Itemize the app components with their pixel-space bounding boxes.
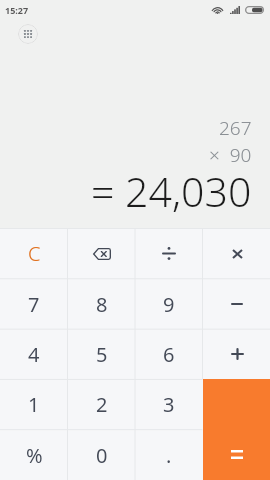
button[interactable]: C [0, 229, 68, 279]
staticText: % [26, 442, 43, 469]
button[interactable]: % [0, 430, 68, 480]
button[interactable]: 1 [0, 379, 68, 429]
button[interactable]: . [135, 430, 203, 480]
staticText: 1 [28, 391, 40, 418]
staticText: 5 [96, 341, 108, 368]
staticText: = 24,030 [91, 163, 252, 219]
button[interactable]: Backspace [68, 229, 136, 279]
staticText: 267 [219, 115, 252, 141]
button[interactable]: 8 [68, 279, 136, 329]
button[interactable]: 0 [68, 430, 136, 480]
button[interactable]: Scientific functions [18, 24, 38, 44]
button[interactable]: Divide [135, 229, 203, 279]
staticText: 0 [96, 442, 108, 469]
staticText: 6 [163, 341, 175, 368]
staticText: . [166, 442, 172, 469]
staticText: 9 [163, 291, 175, 318]
button[interactable]: 2 [68, 379, 136, 429]
staticText: 3 [163, 391, 175, 418]
staticText: C [28, 240, 41, 267]
button[interactable]: Equals [203, 379, 270, 480]
button[interactable]: Minus [203, 279, 270, 329]
staticText: × 90 [209, 142, 252, 168]
button[interactable]: 3 [135, 379, 203, 429]
button[interactable]: 5 [68, 329, 136, 379]
staticText: 8 [96, 291, 108, 318]
staticText: 15:27 [5, 4, 29, 16]
staticText: 2 [96, 391, 108, 418]
button[interactable]: 7 [0, 279, 68, 329]
button[interactable]: 6 [135, 329, 203, 379]
staticText: 4 [28, 341, 40, 368]
button[interactable]: Multiply [203, 229, 270, 279]
button[interactable]: 9 [135, 279, 203, 329]
button[interactable]: Plus [203, 329, 270, 379]
button[interactable]: 4 [0, 329, 68, 379]
staticText: 7 [28, 291, 40, 318]
